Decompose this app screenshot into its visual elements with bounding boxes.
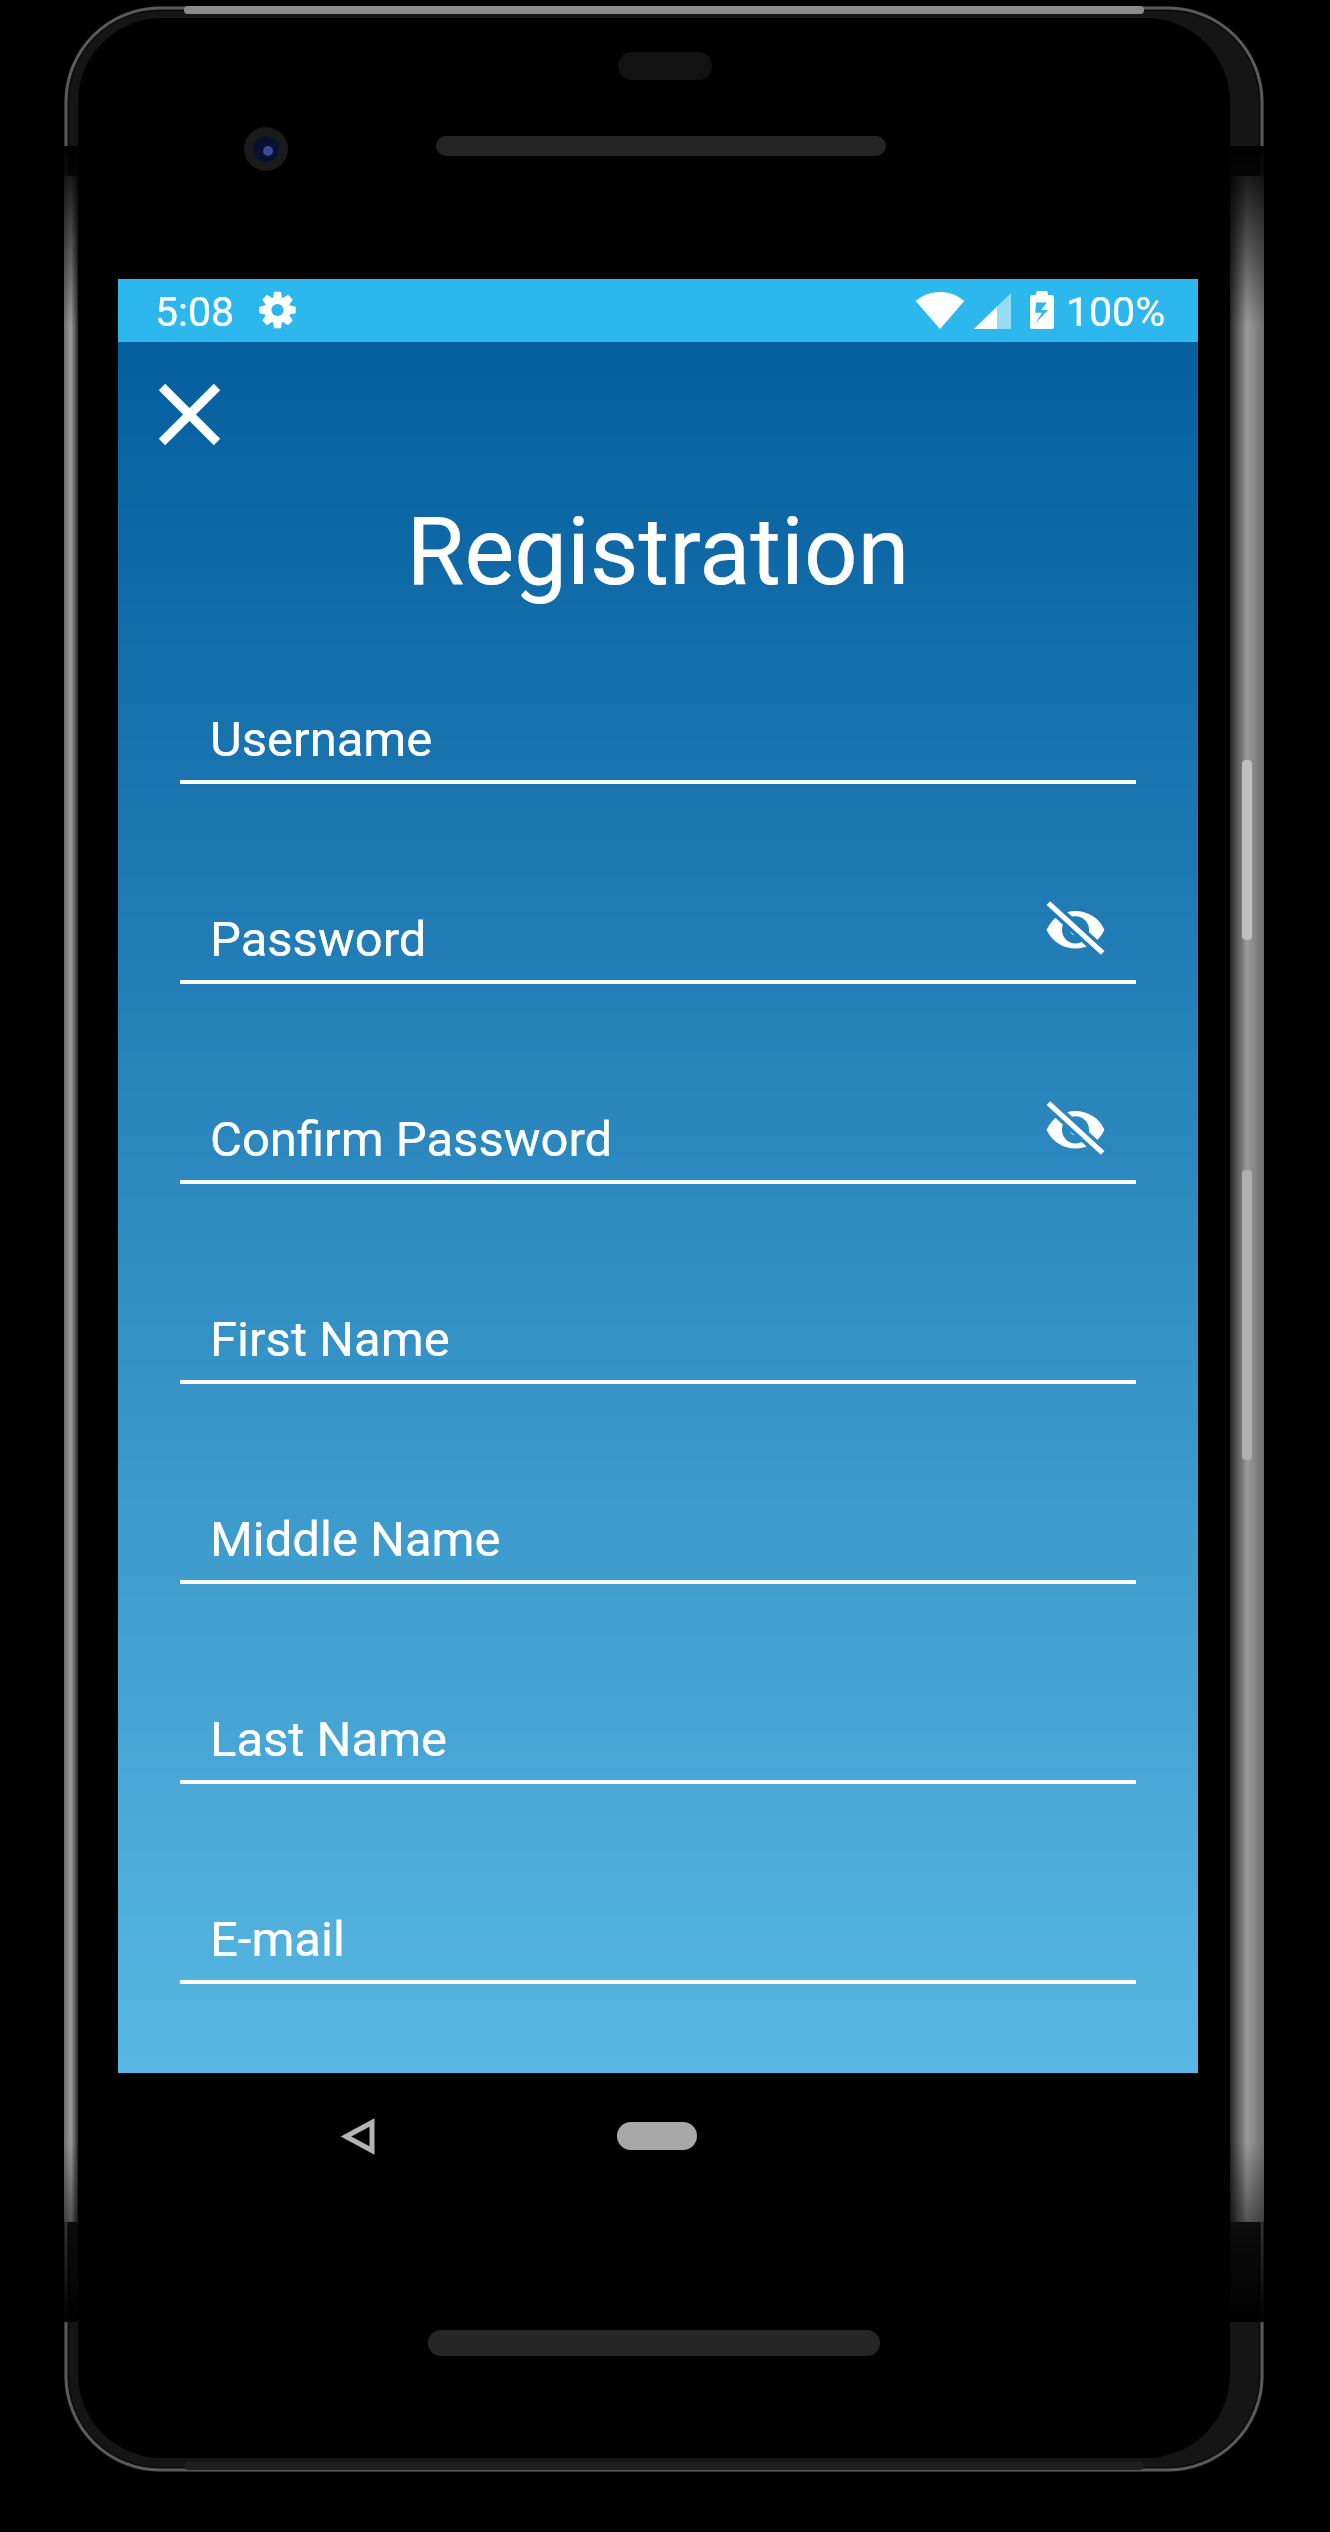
staticText: 100% xyxy=(1066,288,1166,336)
button[interactable]: Back xyxy=(325,2103,391,2169)
staticText: E-mail xyxy=(210,1911,345,1968)
staticText: Middle Name xyxy=(210,1511,501,1568)
button[interactable]: First Name xyxy=(180,1284,1136,1384)
other: Toggle password visibility xyxy=(1046,1102,1105,1154)
staticText: Registration xyxy=(118,497,1198,607)
staticText: Confirm Password xyxy=(210,1111,613,1168)
staticText: Last Name xyxy=(210,1711,448,1768)
button[interactable]: Username xyxy=(180,684,1136,784)
staticText: Username xyxy=(210,711,433,768)
button[interactable]: Home xyxy=(617,2122,697,2150)
button[interactable]: Confirm Password xyxy=(180,1084,1136,1184)
staticText: 5:08 xyxy=(155,288,235,336)
staticText: Password xyxy=(210,911,427,968)
other: Toggle password visibility xyxy=(1046,902,1105,954)
other: Settings xyxy=(259,291,296,329)
button[interactable]: Password xyxy=(180,884,1136,984)
button[interactable]: Last Name xyxy=(180,1684,1136,1784)
staticText: First Name xyxy=(210,1311,450,1368)
button[interactable]: E-mail xyxy=(180,1884,1136,1984)
button[interactable]: Middle Name xyxy=(180,1484,1136,1584)
button[interactable]: Close xyxy=(141,366,238,463)
